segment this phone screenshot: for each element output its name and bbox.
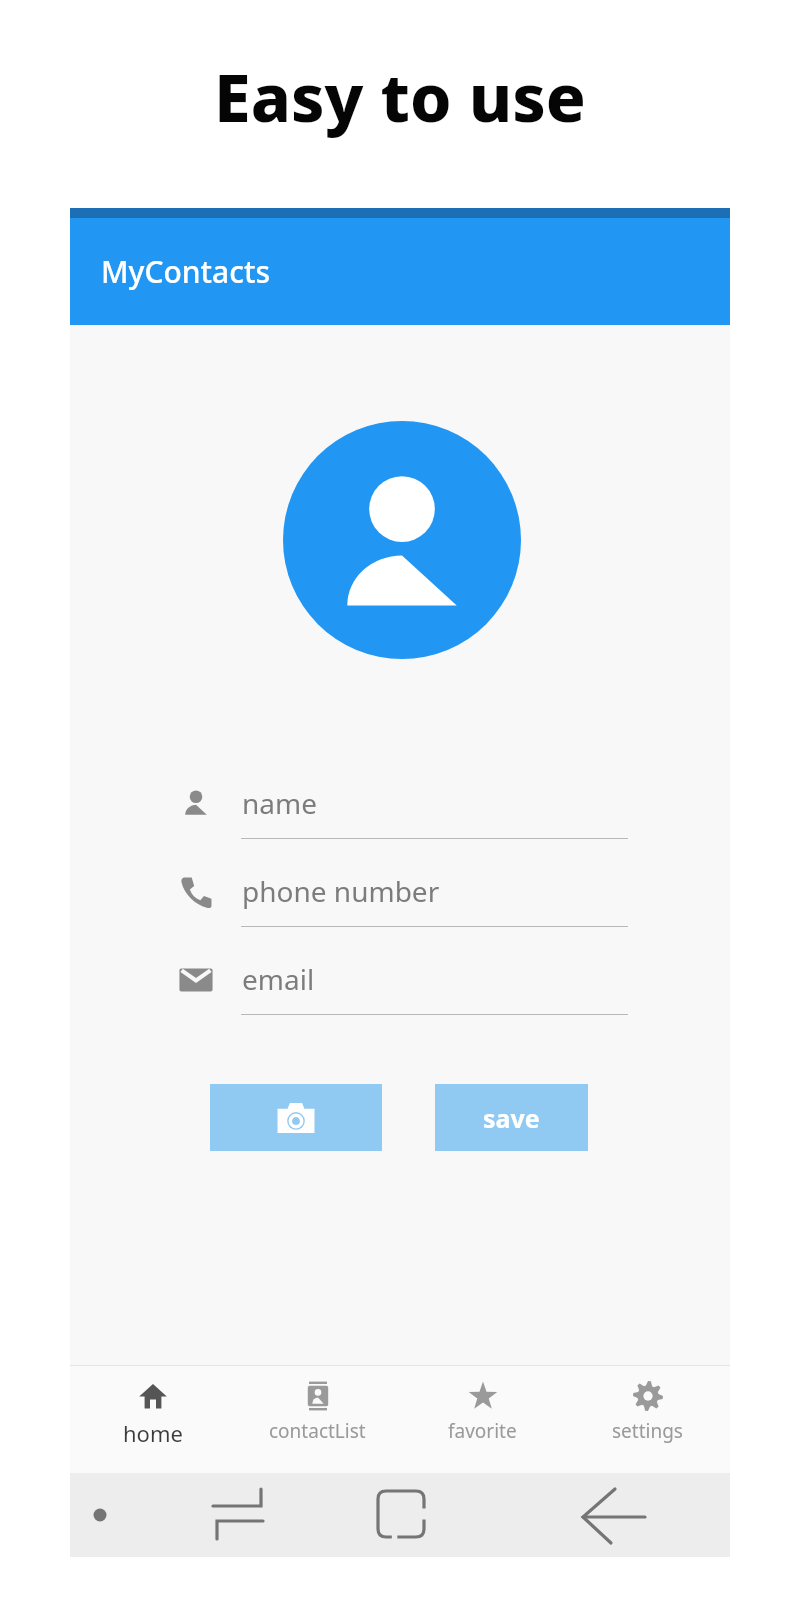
button[interactable]: home bbox=[70, 1366, 235, 1473]
button[interactable]: favorite bbox=[400, 1366, 565, 1473]
staticText: phone number bbox=[242, 872, 440, 910]
other: Phone bbox=[178, 874, 214, 910]
staticText: contactList bbox=[269, 1418, 366, 1444]
staticText: favorite bbox=[448, 1418, 517, 1444]
staticText: settings bbox=[612, 1418, 683, 1444]
button[interactable]: Profile photo bbox=[283, 421, 521, 659]
button[interactable]: Take photo bbox=[210, 1084, 382, 1151]
button[interactable]: contactList bbox=[235, 1366, 400, 1473]
staticText: save bbox=[483, 1101, 540, 1135]
staticText: email bbox=[242, 960, 315, 998]
other: Name bbox=[178, 786, 214, 822]
staticText: Easy to use bbox=[214, 51, 586, 141]
other: Email bbox=[178, 962, 214, 998]
staticText: name bbox=[242, 784, 317, 822]
staticText: home bbox=[123, 1418, 183, 1448]
button[interactable]: settings bbox=[565, 1366, 730, 1473]
button[interactable]: save bbox=[435, 1084, 588, 1151]
staticText: MyContacts bbox=[101, 251, 271, 292]
